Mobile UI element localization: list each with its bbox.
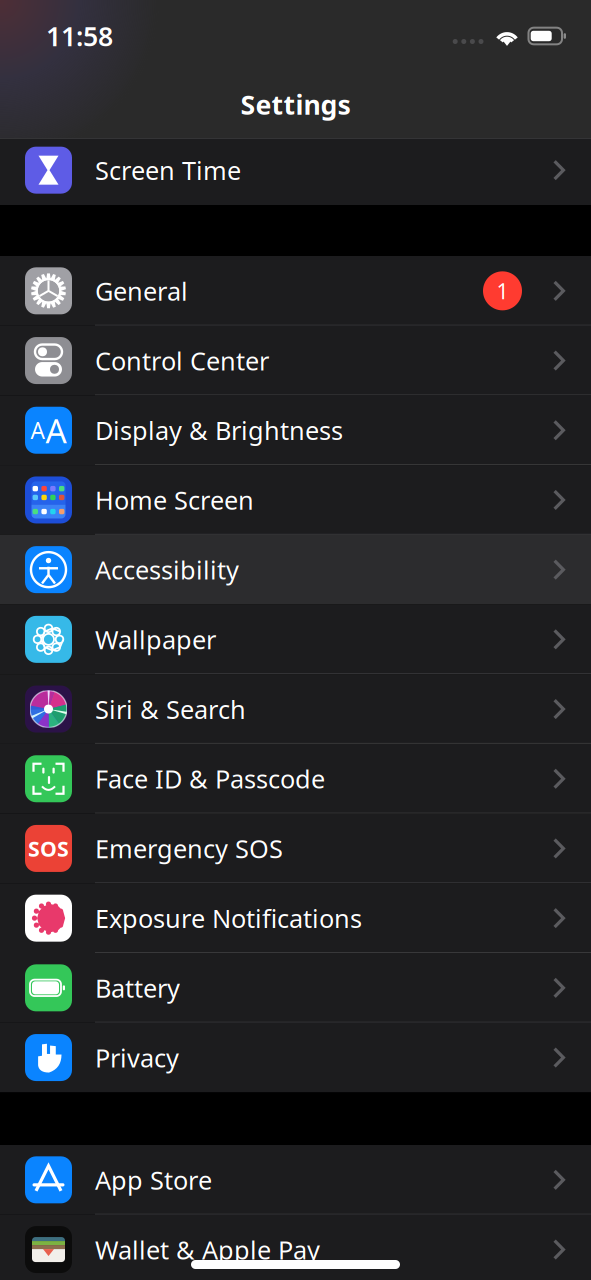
staticText: General <box>95 274 188 308</box>
button[interactable]: Home Screen <box>0 465 591 535</box>
button[interactable]: App Store <box>0 1145 591 1215</box>
button[interactable]: Wallet & Apple Pay <box>0 1215 591 1280</box>
staticText: Accessibility <box>95 553 239 586</box>
button[interactable]: Control Center <box>0 326 591 395</box>
button[interactable]: Face ID & Passcode <box>0 744 591 814</box>
staticText: Battery <box>95 971 180 1005</box>
staticText: Face ID & Passcode <box>95 762 325 795</box>
staticText: App Store <box>95 1163 212 1197</box>
staticText: Wallet & Apple Pay <box>95 1233 320 1266</box>
button[interactable]: Accessibility <box>0 535 591 604</box>
staticText: A <box>45 408 66 452</box>
staticText: Home Screen <box>95 483 254 517</box>
button[interactable]: SOS <box>0 814 591 883</box>
staticText: Settings <box>240 87 350 122</box>
staticText: Screen Time <box>95 153 241 187</box>
staticText: Privacy <box>95 1041 179 1074</box>
staticText: Display & Brightness <box>95 413 343 447</box>
staticText: 11:58 <box>46 18 113 54</box>
button[interactable]: General <box>0 256 591 326</box>
staticText: A <box>30 415 44 445</box>
staticText: SOS <box>28 834 69 863</box>
button[interactable]: Battery <box>0 953 591 1023</box>
button[interactable]: Privacy <box>0 1023 591 1092</box>
staticText: Control Center <box>95 344 269 377</box>
button[interactable]: Exposure Notifications <box>0 883 591 953</box>
button[interactable]: Siri & Search <box>0 674 591 744</box>
button[interactable]: Screen Time <box>0 135 591 205</box>
button[interactable]: A <box>0 395 591 465</box>
staticText: Wallpaper <box>95 622 216 656</box>
staticText: 1 <box>496 277 508 305</box>
staticText: Emergency SOS <box>95 832 283 865</box>
staticText: Exposure Notifications <box>95 901 362 935</box>
staticText: Siri & Search <box>95 692 246 726</box>
button[interactable]: Wallpaper <box>0 604 591 674</box>
